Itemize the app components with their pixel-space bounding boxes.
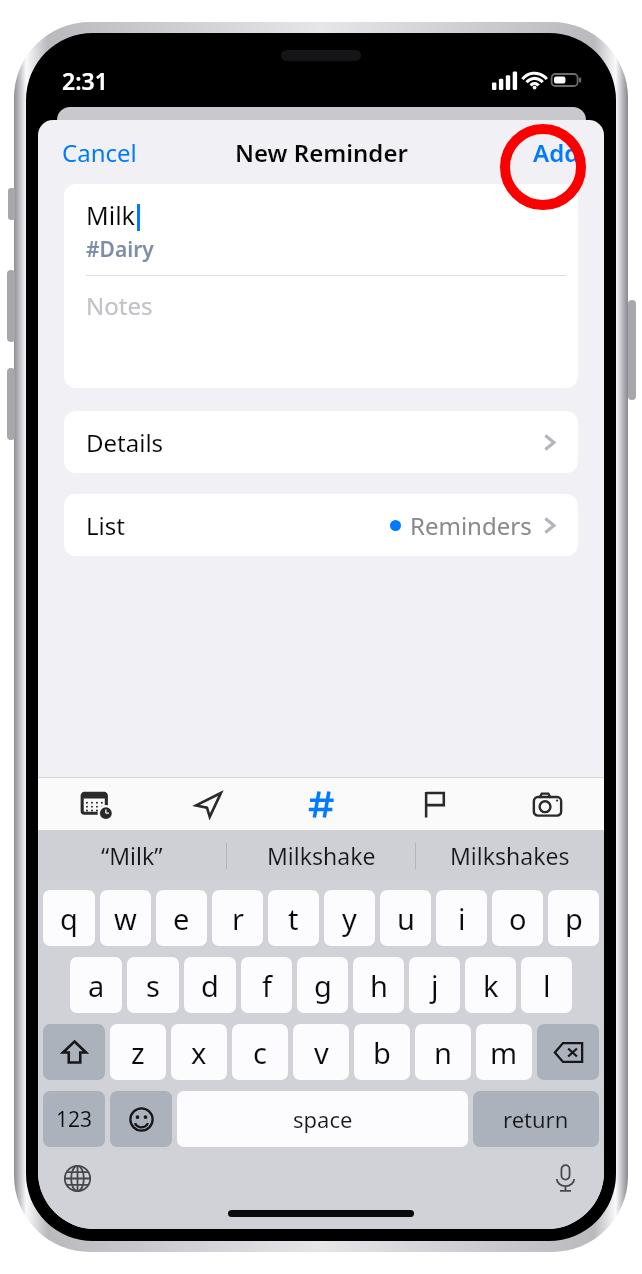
button[interactable]: return bbox=[473, 1091, 599, 1147]
staticText: n bbox=[434, 1033, 452, 1072]
staticText: p bbox=[565, 899, 583, 938]
button[interactable]: b bbox=[354, 1024, 410, 1080]
staticText: x bbox=[191, 1033, 207, 1072]
button[interactable]: r bbox=[212, 890, 263, 946]
button[interactable]: Flag bbox=[378, 778, 491, 830]
staticText: s bbox=[146, 966, 160, 1005]
button[interactable]: Milk bbox=[64, 184, 578, 275]
staticText: Details bbox=[86, 426, 164, 459]
button[interactable]: Add bbox=[509, 124, 604, 181]
button[interactable]: d bbox=[184, 957, 236, 1013]
staticText: j bbox=[431, 966, 439, 1005]
staticText: space bbox=[293, 1104, 353, 1134]
staticText: return bbox=[503, 1104, 569, 1134]
button[interactable]: space bbox=[177, 1091, 468, 1147]
button[interactable]: Location bbox=[152, 778, 265, 830]
staticText: g bbox=[314, 966, 332, 1005]
button[interactable]: Change keyboard language bbox=[54, 1155, 100, 1201]
button[interactable]: Milkshakes bbox=[416, 830, 604, 881]
staticText: 123 bbox=[56, 1105, 93, 1134]
staticText: k bbox=[483, 966, 499, 1005]
staticText: l bbox=[543, 966, 551, 1005]
button[interactable]: Backspace bbox=[537, 1024, 599, 1080]
button[interactable]: a bbox=[70, 957, 122, 1013]
button[interactable]: List bbox=[64, 494, 578, 556]
staticText: z bbox=[131, 1033, 145, 1072]
button[interactable]: m bbox=[476, 1024, 532, 1080]
button[interactable]: t bbox=[268, 890, 319, 946]
staticText: u bbox=[397, 899, 415, 938]
button[interactable]: o bbox=[492, 890, 543, 946]
staticText: Milkshakes bbox=[450, 840, 570, 871]
staticText: b bbox=[373, 1033, 391, 1072]
staticText: Milkshake bbox=[267, 840, 376, 871]
button[interactable]: v bbox=[293, 1024, 349, 1080]
staticText: Cancel bbox=[62, 136, 137, 169]
staticText: e bbox=[173, 899, 190, 938]
button[interactable]: Dictation bbox=[542, 1155, 588, 1201]
button[interactable]: Details bbox=[64, 411, 578, 473]
button[interactable]: y bbox=[324, 890, 375, 946]
button[interactable]: Shift bbox=[43, 1024, 105, 1080]
button[interactable]: f bbox=[241, 957, 292, 1013]
staticText: “Milk” bbox=[101, 840, 163, 871]
staticText: o bbox=[509, 899, 527, 938]
button[interactable]: 123 bbox=[43, 1091, 105, 1147]
button[interactable]: n bbox=[415, 1024, 471, 1080]
staticText: New Reminder bbox=[235, 136, 408, 169]
button[interactable]: Tag bbox=[265, 778, 378, 830]
button[interactable]: w bbox=[100, 890, 151, 946]
button[interactable]: Cancel bbox=[38, 124, 161, 181]
button[interactable]: h bbox=[353, 957, 404, 1013]
staticText: w bbox=[114, 899, 137, 938]
button[interactable]: g bbox=[297, 957, 348, 1013]
staticText: q bbox=[60, 899, 78, 938]
staticText: f bbox=[262, 966, 272, 1005]
button[interactable]: Date and time bbox=[38, 778, 152, 830]
staticText: t bbox=[288, 899, 299, 938]
staticText: Reminders bbox=[410, 509, 532, 542]
button[interactable]: c bbox=[232, 1024, 288, 1080]
staticText: 2:31 bbox=[62, 65, 108, 96]
button[interactable]: Emoji bbox=[110, 1091, 172, 1147]
staticText: r bbox=[232, 899, 244, 938]
button[interactable]: j bbox=[409, 957, 460, 1013]
staticText: #Dairy bbox=[86, 235, 154, 264]
button[interactable]: q bbox=[43, 890, 95, 946]
button[interactable]: Milkshake bbox=[227, 830, 415, 881]
button[interactable]: s bbox=[127, 957, 179, 1013]
button[interactable]: p bbox=[548, 890, 599, 946]
button[interactable]: “Milk” bbox=[38, 830, 226, 881]
staticText: List bbox=[86, 509, 125, 542]
button[interactable]: e bbox=[156, 890, 207, 946]
staticText: Add bbox=[533, 136, 580, 169]
staticText: h bbox=[370, 966, 388, 1005]
staticText: a bbox=[88, 966, 105, 1005]
button[interactable]: x bbox=[171, 1024, 227, 1080]
button[interactable]: l bbox=[521, 957, 572, 1013]
staticText: d bbox=[201, 966, 219, 1005]
button[interactable]: Notes bbox=[64, 276, 578, 388]
staticText: m bbox=[490, 1033, 518, 1072]
button[interactable]: Add photo bbox=[491, 778, 604, 830]
button[interactable]: k bbox=[465, 957, 516, 1013]
staticText: Notes bbox=[86, 289, 153, 322]
staticText: y bbox=[342, 899, 357, 938]
button[interactable]: i bbox=[436, 890, 487, 946]
button[interactable]: u bbox=[380, 890, 431, 946]
staticText: v bbox=[314, 1033, 329, 1072]
button[interactable]: z bbox=[110, 1024, 166, 1080]
staticText: c bbox=[253, 1033, 267, 1072]
staticText: Milk bbox=[86, 198, 135, 232]
staticText: i bbox=[458, 899, 466, 938]
